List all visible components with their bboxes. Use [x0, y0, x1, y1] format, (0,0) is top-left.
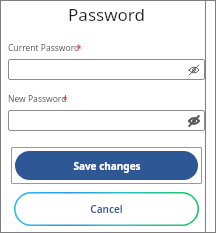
staticText: Cancel — [90, 202, 123, 216]
staticText: Current Password — [8, 42, 80, 54]
button[interactable]: Show new password — [8, 110, 205, 131]
staticText: New Password — [8, 93, 67, 105]
staticText: * — [77, 43, 82, 54]
button[interactable]: Show current password — [187, 63, 200, 76]
button[interactable]: Show new password — [187, 114, 200, 127]
button[interactable]: Cancel — [14, 192, 199, 226]
button[interactable]: Save changes — [15, 151, 198, 180]
staticText: * — [63, 94, 68, 105]
staticText: Save changes — [73, 159, 141, 173]
staticText: Password — [8, 3, 205, 26]
button[interactable]: Show current password — [8, 59, 205, 80]
